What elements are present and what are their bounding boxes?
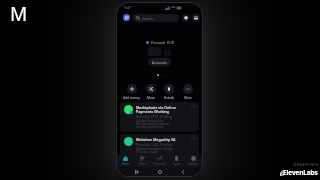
staticText: JD (125, 15, 129, 20)
button[interactable]: Details (160, 84, 177, 100)
staticText: Home (122, 162, 130, 166)
staticText: Invest (139, 162, 147, 166)
staticText: Yesterday, 14:24 · Pending System transa… (136, 143, 173, 154)
button[interactable]: Recents (133, 168, 140, 175)
staticText: 9:41 (124, 5, 132, 10)
button[interactable]: Payments (151, 156, 168, 166)
staticText: Add money (123, 96, 140, 100)
staticText: GENERATED WITH (293, 163, 318, 167)
button[interactable]: Home (117, 156, 134, 166)
button[interactable]: Back (179, 168, 186, 175)
staticText: M (10, 1, 28, 27)
button[interactable]: Accounts (148, 58, 171, 66)
button[interactable]: Cards (192, 14, 200, 22)
button[interactable]: More (179, 84, 196, 100)
staticText: Marktplaats via Online Payments Working (136, 105, 176, 114)
button[interactable]: Add money (123, 84, 140, 100)
button[interactable]: Home (156, 168, 163, 175)
button[interactable]: Marktplaats via Online Payments Working (120, 102, 199, 132)
staticText: Personal · EUR (151, 40, 174, 44)
staticText: ElevenLabs (283, 168, 318, 177)
button[interactable]: Lifestyle (185, 156, 202, 166)
staticText: Crypto (172, 162, 181, 166)
staticText: Search (142, 16, 153, 21)
button[interactable]: Security (182, 14, 190, 22)
staticText: Payments (153, 162, 166, 166)
button[interactable]: Search (133, 14, 179, 22)
button[interactable]: Move (142, 84, 159, 100)
staticText: Lifestyle (188, 162, 199, 166)
button[interactable]: Webshoe Megaship SA (120, 134, 199, 157)
staticText: Accounts (152, 60, 167, 65)
staticText: Details (164, 96, 174, 100)
staticText: More (184, 96, 192, 100)
staticText: Yesterday, 17:30 · Pending Incident tran… (136, 115, 172, 129)
button[interactable]: Invest (134, 156, 151, 166)
button[interactable]: Profile (123, 14, 130, 21)
button[interactable]: Crypto (168, 156, 185, 166)
staticText: Webshoe Megaship SA (136, 137, 176, 142)
staticText: Move (147, 96, 155, 100)
